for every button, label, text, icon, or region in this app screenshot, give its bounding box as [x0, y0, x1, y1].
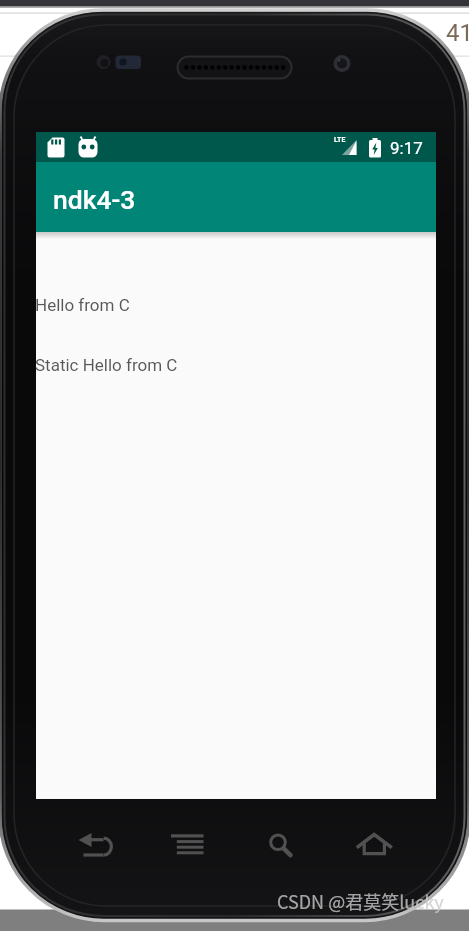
button[interactable]: ndk4-3: [36, 162, 436, 232]
staticText: LTE: [334, 136, 346, 144]
staticText: 41: [446, 19, 469, 47]
staticText: Static Hello from C: [35, 355, 178, 375]
button[interactable]: [354, 826, 394, 862]
staticText: Hello from C: [35, 295, 130, 315]
button[interactable]: [168, 826, 208, 862]
staticText: ndk4-3: [53, 184, 136, 215]
button[interactable]: [76, 826, 116, 862]
staticText: CSDN @君莫笑lucky: [277, 888, 444, 914]
staticText: 9:17: [390, 138, 423, 158]
button[interactable]: [260, 826, 300, 862]
